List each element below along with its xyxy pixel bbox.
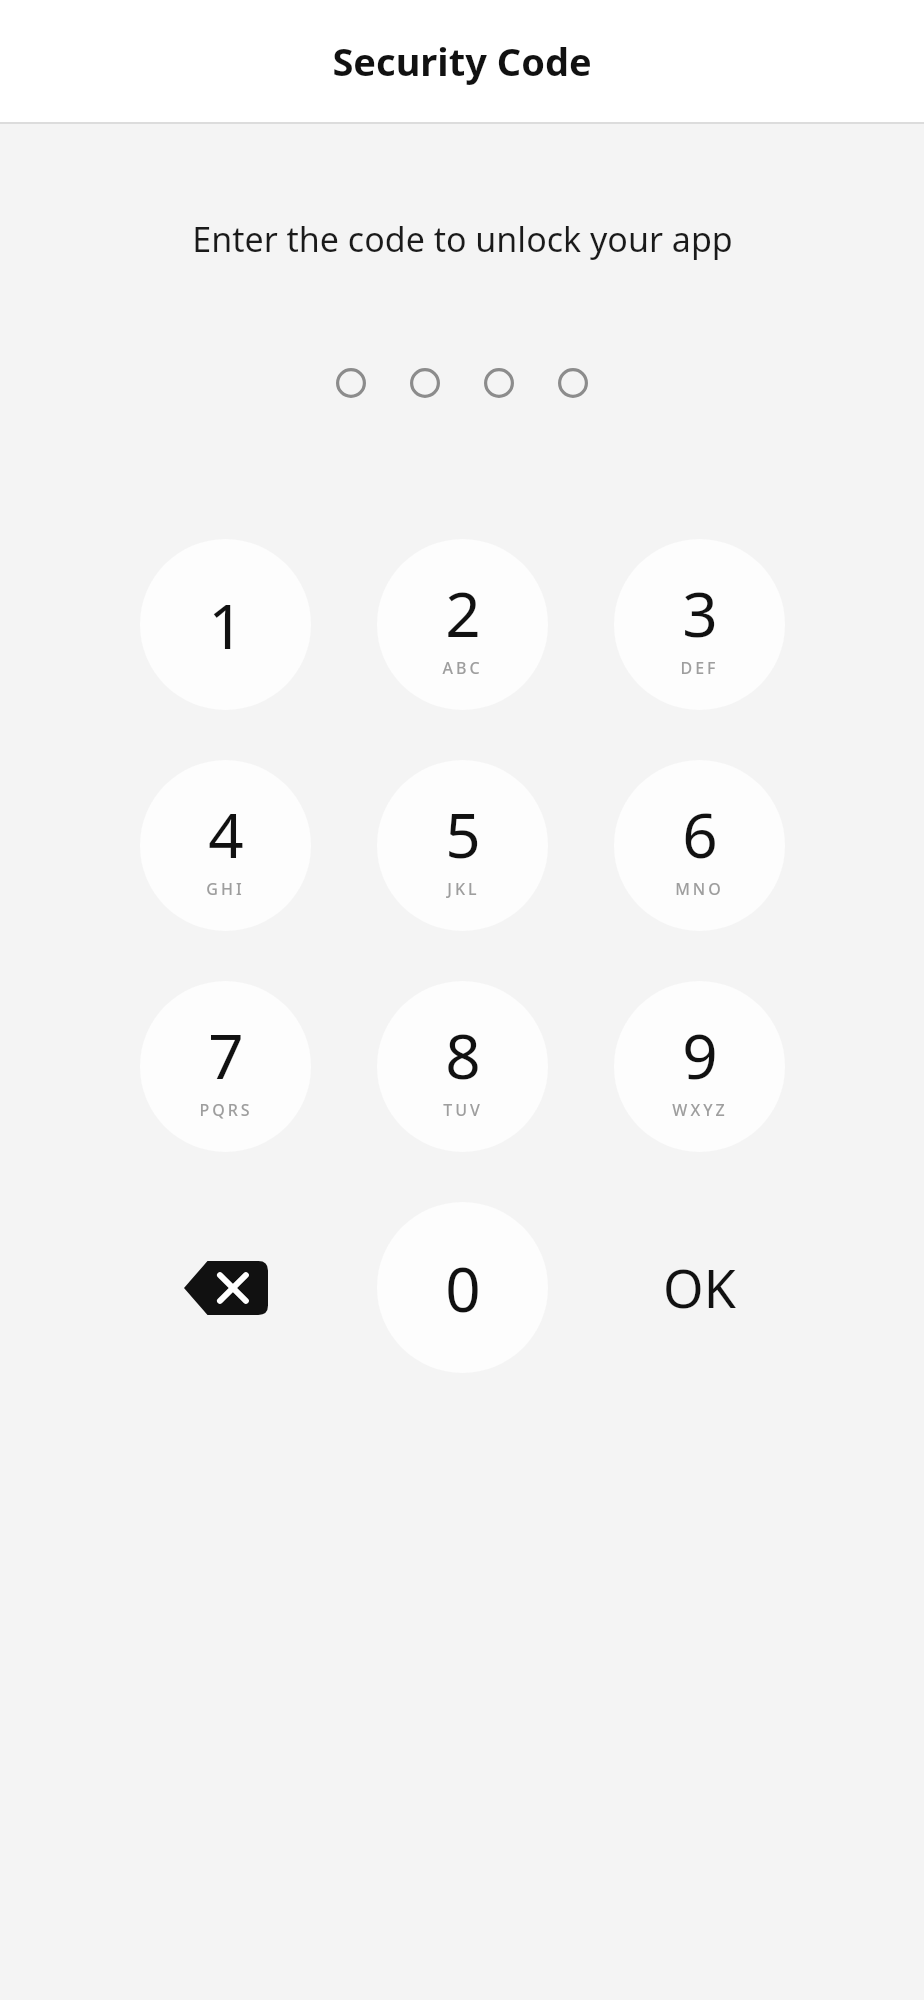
staticText: ABC [442,657,483,679]
button[interactable]: 8 [377,981,548,1152]
button[interactable]: 2 [377,539,548,710]
staticText: WXYZ [672,1099,728,1121]
button[interactable]: Backspace [140,1202,311,1373]
button[interactable]: 7 [140,981,311,1152]
button[interactable]: 3 [614,539,785,710]
staticText: 9 [682,1013,718,1097]
staticText: DEF [680,657,719,679]
button[interactable]: 5 [377,760,548,931]
staticText: Security Code [332,35,592,87]
staticText: TUV [443,1099,483,1121]
button[interactable]: 9 [614,981,785,1152]
staticText: 3 [682,571,718,655]
button[interactable]: 1 [140,539,311,710]
staticText: 5 [445,792,481,876]
staticText: 4 [208,792,244,876]
staticText: 2 [445,571,481,655]
button[interactable]: 4 [140,760,311,931]
staticText: 8 [445,1013,481,1097]
staticText: JKL [447,878,480,900]
staticText: 6 [682,792,718,876]
button[interactable]: OK [614,1202,785,1373]
staticText: Enter the code to unlock your app [192,216,733,262]
staticText: 0 [445,1246,481,1330]
staticText: 7 [208,1013,244,1097]
staticText: MNO [675,878,724,900]
staticText: 1 [208,583,244,667]
button[interactable]: 0 [377,1202,548,1373]
button[interactable]: 6 [614,760,785,931]
staticText: OK [663,1252,736,1323]
staticText: GHI [206,878,245,900]
staticText: PQRS [199,1099,253,1121]
